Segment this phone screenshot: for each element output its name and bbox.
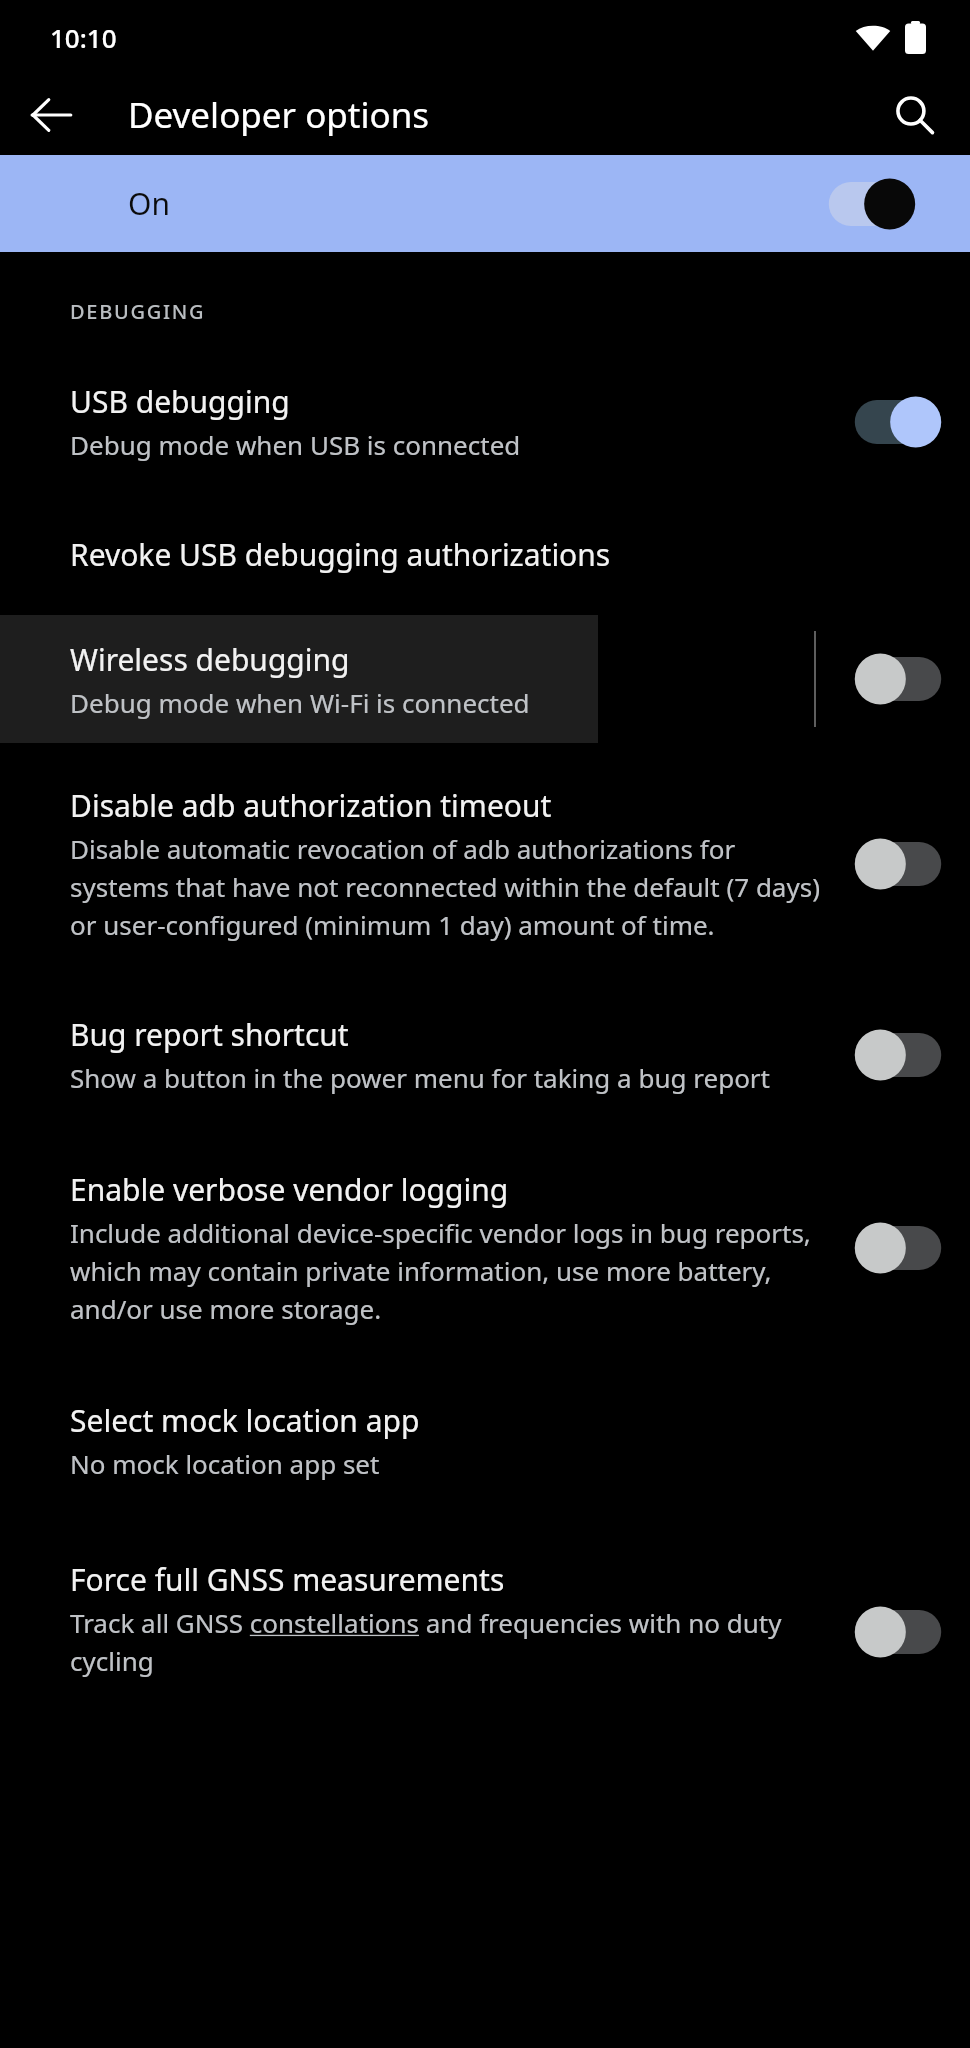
staticText: Disable adb authorization timeout bbox=[70, 785, 552, 826]
button[interactable]: Toggle off bbox=[850, 1026, 946, 1084]
button[interactable]: Enable verbose vendor logging bbox=[0, 1153, 970, 1342]
button[interactable]: Back bbox=[17, 81, 85, 149]
staticText: USB debugging bbox=[70, 381, 290, 422]
staticText: 10:10 bbox=[50, 20, 117, 55]
staticText: Disable automatic revocation of adb auth… bbox=[70, 831, 824, 942]
button[interactable]: USB debugging on bbox=[850, 393, 946, 451]
staticText: DEBUGGING bbox=[70, 298, 206, 325]
button[interactable]: Select mock location app bbox=[0, 1384, 970, 1497]
button[interactable]: Disable adb authorization timeout bbox=[0, 769, 970, 958]
staticText: Track all GNSS constellations and freque… bbox=[70, 1605, 824, 1678]
staticText: Enable verbose vendor logging bbox=[70, 1169, 509, 1210]
button[interactable]: Toggle off bbox=[850, 1603, 946, 1661]
button[interactable]: USB debugging bbox=[0, 365, 970, 478]
button[interactable]: Toggle off bbox=[850, 650, 946, 708]
staticText: Show a button in the power menu for taki… bbox=[70, 1060, 770, 1095]
staticText: Wireless debugging bbox=[70, 639, 350, 680]
button[interactable]: Force full GNSS measurements bbox=[0, 1543, 970, 1678]
staticText: Debug mode when Wi-Fi is connected bbox=[70, 685, 530, 720]
staticText: Revoke USB debugging authorizations bbox=[70, 534, 611, 575]
staticText: Developer options bbox=[128, 91, 430, 139]
button[interactable]: Developer options on bbox=[824, 175, 920, 233]
staticText: On bbox=[128, 183, 170, 224]
staticText: Force full GNSS measurements bbox=[70, 1559, 505, 1600]
staticText: Debug mode when USB is connected bbox=[70, 427, 521, 462]
staticText: Select mock location app bbox=[70, 1400, 420, 1441]
staticText: No mock location app set bbox=[70, 1446, 380, 1481]
button[interactable]: Bug report shortcut bbox=[0, 998, 970, 1111]
button[interactable]: On bbox=[0, 155, 970, 252]
button[interactable]: Wireless debugging bbox=[0, 615, 970, 743]
button[interactable]: Search bbox=[880, 81, 948, 149]
staticText: Bug report shortcut bbox=[70, 1014, 349, 1055]
staticText: Include additional device-specific vendo… bbox=[70, 1215, 824, 1326]
button[interactable]: Revoke USB debugging authorizations bbox=[0, 518, 970, 591]
button[interactable]: Toggle off bbox=[850, 835, 946, 893]
button[interactable]: Toggle off bbox=[850, 1219, 946, 1277]
